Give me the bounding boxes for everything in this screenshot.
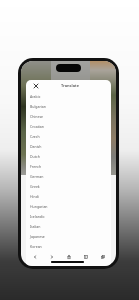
button[interactable]: Hindi — [26, 191, 111, 201]
button[interactable]: Bookmarks — [80, 252, 91, 261]
button[interactable]: Japanese — [26, 231, 111, 241]
staticText: French — [30, 164, 42, 169]
button[interactable]: Korean — [26, 241, 111, 251]
button[interactable]: Chinese — [26, 111, 111, 121]
staticText: Hindi — [30, 194, 39, 199]
button[interactable]: Italian — [26, 221, 111, 231]
staticText: Danish — [30, 144, 42, 149]
staticText: Greek — [30, 184, 40, 189]
button[interactable]: Tabs — [97, 252, 108, 261]
button[interactable]: Back — [29, 252, 40, 261]
staticText: Japanese — [30, 234, 45, 239]
button[interactable]: Arabic — [26, 91, 111, 101]
button[interactable]: Czech — [26, 131, 111, 141]
staticText: Czech — [30, 134, 40, 139]
button[interactable]: Danish — [26, 141, 111, 151]
button[interactable]: Croatian — [26, 121, 111, 131]
staticText: Bulgarian — [30, 104, 46, 109]
button[interactable]: Dutch — [26, 151, 111, 161]
staticText: Translate — [61, 83, 80, 88]
staticText: Arabic — [30, 94, 41, 99]
button[interactable]: Greek — [26, 181, 111, 191]
button[interactable]: German — [26, 171, 111, 181]
staticText: Hungarian — [30, 204, 48, 209]
staticText: Croatian — [30, 124, 44, 129]
button[interactable]: Hungarian — [26, 201, 111, 211]
staticText: German — [30, 174, 44, 179]
button[interactable]: Share — [63, 252, 74, 261]
button[interactable]: Bulgarian — [26, 101, 111, 111]
button[interactable]: French — [26, 161, 111, 171]
button[interactable]: Close — [31, 81, 40, 90]
staticText: Dutch — [30, 154, 40, 159]
staticText: Korean — [30, 244, 42, 249]
button[interactable]: Icelandic — [26, 211, 111, 221]
staticText: Italian — [30, 224, 41, 229]
staticText: Icelandic — [30, 214, 45, 219]
button[interactable]: Forward — [46, 252, 57, 261]
staticText: Chinese — [30, 114, 44, 119]
